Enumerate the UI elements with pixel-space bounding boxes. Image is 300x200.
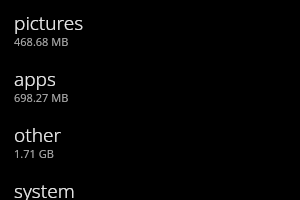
staticText: other [14,122,61,148]
staticText: 468.68 MB [14,34,69,49]
button[interactable]: apps [0,66,300,122]
other: storage breakdown [0,0,300,200]
button[interactable]: system [0,178,300,200]
staticText: apps [14,66,56,92]
staticText: pictures [14,10,84,36]
button[interactable]: other [0,122,300,178]
button[interactable]: pictures [0,10,300,66]
staticText: 698.27 MB [14,90,69,105]
staticText: system [14,178,75,200]
staticText: 1.71 GB [14,146,54,161]
